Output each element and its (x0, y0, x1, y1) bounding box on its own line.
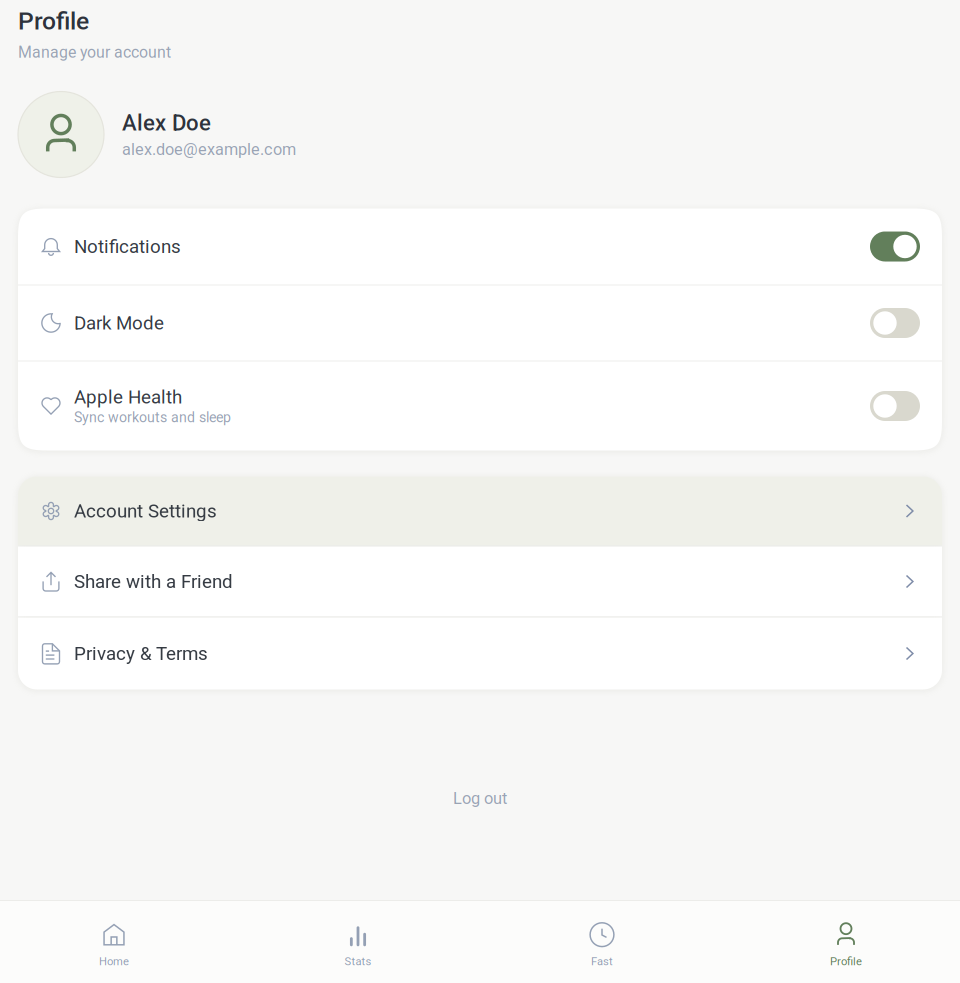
button[interactable]: Fast (488, 897, 716, 983)
button[interactable]: Privacy & Terms (18, 617, 942, 689)
button[interactable]: Stats (244, 897, 472, 983)
staticText: Fast (591, 955, 613, 968)
button[interactable]: Dark Mode (18, 285, 942, 360)
staticText: Alex Doe (122, 110, 211, 136)
staticText: Log out (453, 789, 507, 808)
staticText: Apple Health (74, 386, 182, 408)
staticText: Stats (344, 955, 371, 968)
button[interactable]: Account Settings (18, 476, 942, 545)
button[interactable]: Home (0, 897, 228, 983)
button[interactable]: Apple Health (18, 361, 942, 450)
staticText: Sync workouts and sleep (74, 409, 231, 426)
button[interactable]: Notifications (18, 208, 942, 284)
staticText: Dark Mode (74, 312, 164, 334)
button[interactable]: Log out (0, 778, 960, 818)
staticText: Privacy & Terms (74, 642, 208, 664)
staticText: Manage your account (18, 43, 171, 61)
staticText: Profile (18, 6, 89, 35)
staticText: Profile (830, 955, 862, 968)
staticText: alex.doe@example.com (122, 140, 296, 159)
staticText: Share with a Friend (74, 570, 233, 592)
staticText: Account Settings (74, 500, 217, 522)
button[interactable]: Profile (732, 897, 960, 983)
staticText: Notifications (74, 235, 181, 257)
button[interactable]: Share with a Friend (18, 546, 942, 616)
staticText: Home (99, 955, 129, 968)
